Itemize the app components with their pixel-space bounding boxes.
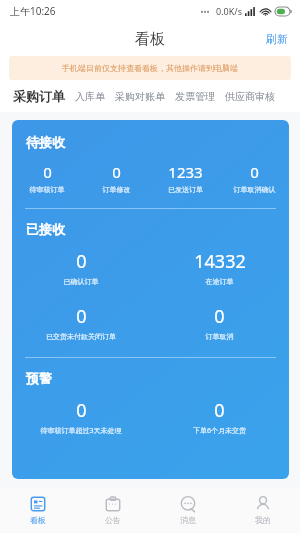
button[interactable]: 0 [12, 249, 150, 286]
button[interactable]: 1233 [151, 162, 220, 194]
staticText: 已发送订单 [151, 185, 220, 194]
staticText: 订单取消 [150, 332, 289, 341]
staticText: 发票管理 [175, 90, 215, 103]
staticText: 公告 [105, 515, 121, 525]
staticText: 0 [250, 162, 259, 182]
staticText: 消息 [180, 515, 196, 525]
button[interactable]: 待接收 [12, 120, 289, 479]
staticText: ••• [200, 6, 210, 17]
staticText: 在途订单 [150, 277, 289, 286]
staticText: 下单6个月未交货 [150, 426, 289, 436]
button[interactable]: 采购对账单 [110, 86, 170, 107]
staticText: 刷新 [266, 32, 288, 46]
staticText: 0 [76, 249, 87, 274]
button[interactable]: 消息 [150, 487, 225, 533]
button[interactable]: 看板 [0, 487, 75, 533]
staticText: 0 [76, 304, 87, 329]
staticText: 看板 [135, 30, 165, 49]
staticText: 待审核订单超过3天未处理 [12, 426, 150, 436]
staticText: 采购订单 [13, 88, 65, 104]
button[interactable]: 供应商审核 [220, 86, 280, 107]
staticText: 已交货未付款关闭订单 [12, 332, 150, 341]
button[interactable]: 0 [150, 398, 289, 436]
button[interactable]: 刷新 [254, 26, 300, 52]
staticText: 0.0K/s [216, 5, 242, 17]
button[interactable]: 0 [12, 398, 150, 436]
button[interactable]: 0 [220, 162, 289, 194]
staticText: 待接收 [26, 134, 65, 150]
button[interactable]: 公告 [75, 487, 150, 533]
staticText: 看板 [30, 515, 46, 525]
staticText: 订单取消确认 [220, 185, 289, 194]
button[interactable]: 0 [82, 162, 151, 194]
staticText: 已确认订单 [12, 277, 150, 286]
button[interactable]: 采购订单 [8, 84, 70, 108]
staticText: 已接收 [26, 221, 65, 237]
staticText: 0 [43, 162, 52, 182]
staticText: 预警 [26, 370, 52, 386]
button[interactable]: 0 [12, 304, 150, 341]
staticText: 0 [214, 304, 225, 329]
staticText: 14332 [194, 249, 246, 274]
staticText: 0 [214, 398, 225, 423]
staticText: 供应商审核 [225, 90, 275, 103]
staticText: 入库单 [75, 90, 105, 103]
button[interactable]: 发票管理 [170, 86, 220, 107]
button[interactable]: 入库单 [70, 86, 110, 107]
staticText: 0 [76, 398, 87, 423]
staticText: 我的 [255, 515, 271, 525]
staticText: 上午10:26 [10, 4, 56, 18]
staticText: 0 [112, 162, 121, 182]
staticText: 采购对账单 [115, 90, 165, 103]
button[interactable]: 14332 [150, 249, 289, 286]
button[interactable]: 我的 [225, 487, 300, 533]
button[interactable]: 0 [12, 162, 82, 194]
staticText: 待审核订单 [12, 185, 82, 194]
button[interactable]: 0 [150, 304, 289, 341]
staticText: 手机端目前仅支持查看看板，其他操作请到电脑端 [62, 63, 238, 73]
staticText: 订单修改 [82, 185, 151, 194]
staticText: 1233 [168, 162, 203, 182]
